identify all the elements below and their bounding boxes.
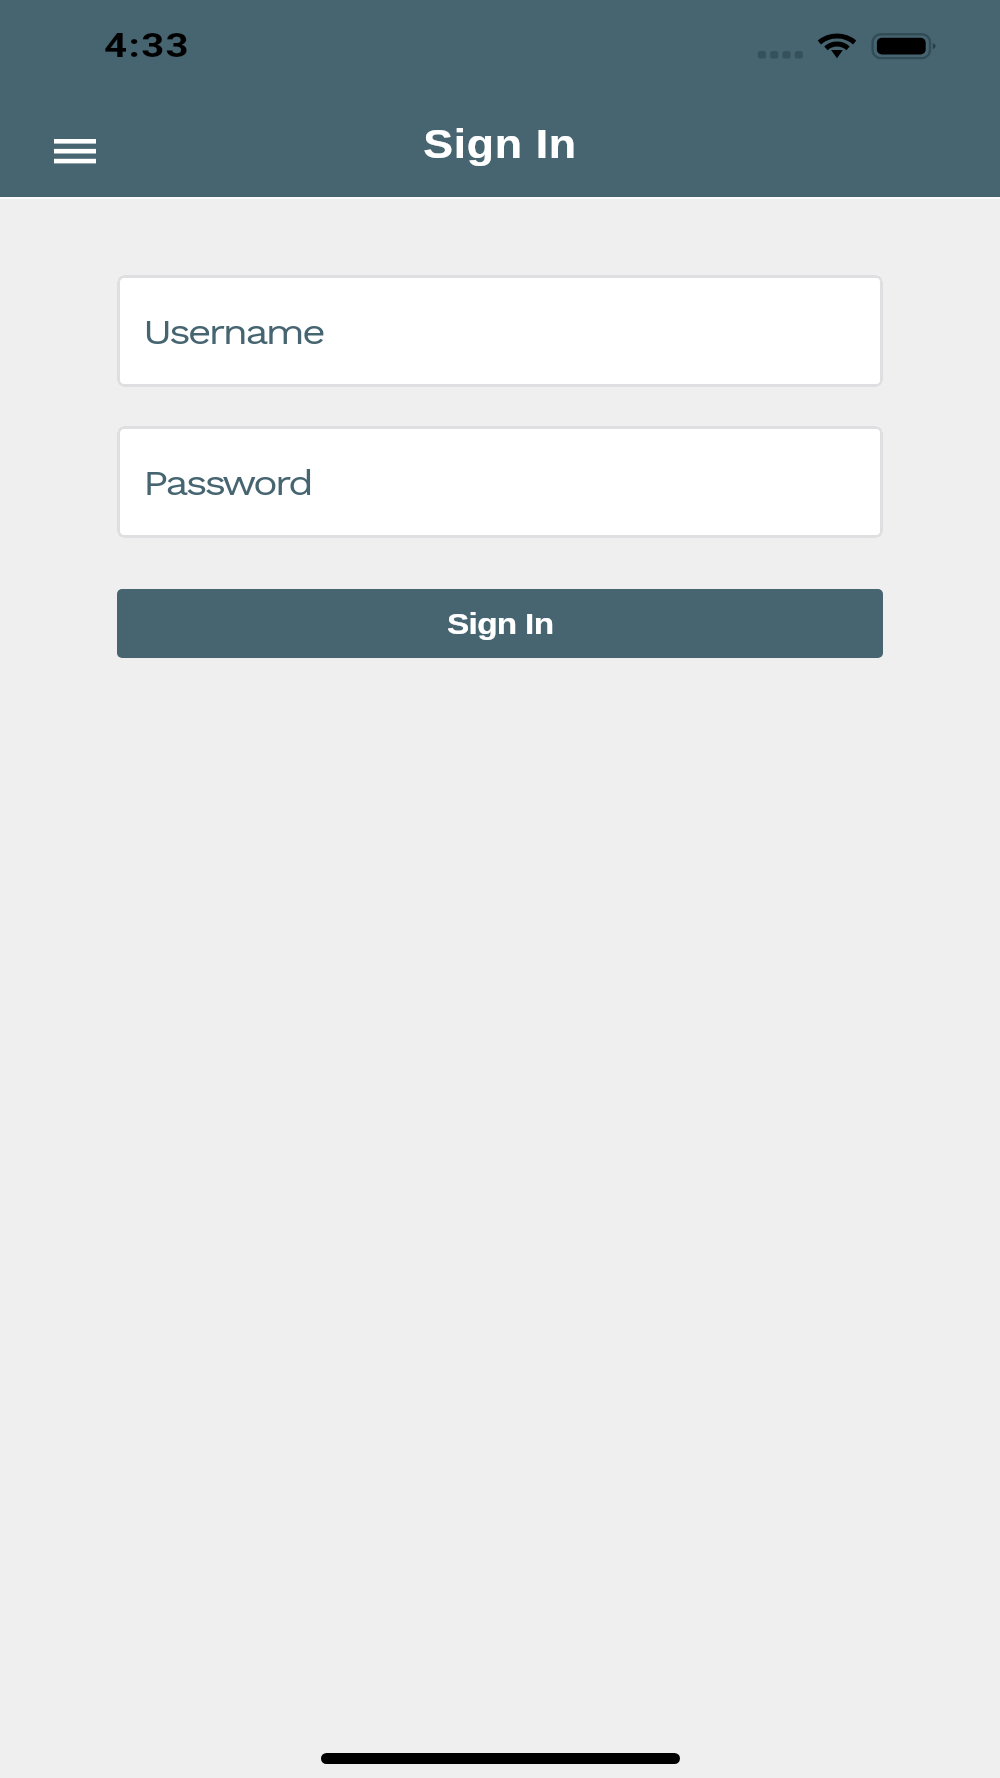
button[interactable]: Sign In bbox=[117, 589, 883, 658]
staticText: Password bbox=[143, 462, 312, 503]
staticText: Username bbox=[143, 311, 323, 352]
staticText: 4:33 bbox=[104, 26, 191, 65]
staticText: Sign In bbox=[447, 608, 554, 640]
button[interactable]: Password bbox=[117, 426, 883, 538]
button[interactable]: Open navigation menu bbox=[33, 118, 117, 184]
staticText: Sign In bbox=[0, 121, 1000, 167]
button[interactable]: Username bbox=[117, 275, 883, 387]
